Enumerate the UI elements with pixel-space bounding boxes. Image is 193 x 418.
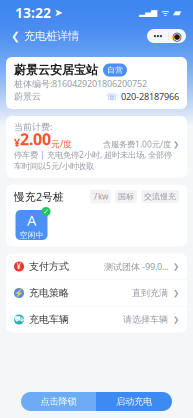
staticText: 020-28187966 [121,90,179,103]
staticText: 慢充2号桩 [14,189,64,204]
button[interactable]: Close [169,29,186,43]
staticText: 蔚景云安居宝站 [14,62,98,77]
staticText: ¥ [16,261,21,272]
staticText: ❯ [173,262,179,271]
staticText: ◉ [172,29,182,43]
staticText: ❯ [173,315,179,324]
button[interactable]: 启动充电 [96,392,172,411]
button[interactable]: More options [147,29,168,43]
staticText: 自营 [107,65,123,75]
staticText: ⚡ [14,288,24,298]
button[interactable]: 点击降锁 [21,392,96,411]
staticText: ❯ [173,140,179,148]
staticText: ¥ [14,135,20,150]
staticText: 含服务费1.00元/度 [103,139,171,150]
staticText: 国标 [118,191,134,202]
staticText: ❯ [173,289,179,297]
staticText: 支付方式 [29,260,69,273]
staticText: ᯤ [157,6,170,19]
button[interactable]: 含服务费1.00元/度 [103,139,179,150]
staticText: 直到充满 [132,287,168,299]
staticText: 当前计费: [14,120,52,133]
button[interactable]: ☏ [106,90,179,103]
button[interactable]: ⚡ [6,280,187,306]
staticText: 充电车辆 [29,313,69,326]
button[interactable]: ⛟ [6,306,187,332]
staticText: ➤ [51,6,63,19]
staticText: ✓ [43,207,49,216]
staticText: 请选择车辆 [123,314,168,325]
staticText: A [27,210,36,230]
staticText: ❮ [11,30,20,42]
staticText: 元/度 [51,138,72,150]
button[interactable]: Back [0,26,87,46]
staticText: ☏ [106,91,118,102]
staticText: 13:22 [15,3,51,22]
button[interactable]: ¥ [6,253,187,279]
staticText: ▰ [170,6,181,19]
staticText: 蔚景云 [14,91,41,102]
staticText: 桩体编号:8160429201806200752 [14,77,147,90]
staticText: ⛟ [14,315,24,323]
staticText: 点击降锁 [40,396,76,407]
staticText: 2.00 [20,128,51,150]
button[interactable]: Connector A, idle [14,205,52,241]
staticText: 空闲中 [19,230,43,240]
staticText: 停车费 | 充电免停2小时, 超时未出场, 全部停车时间以5元/小时收取 [14,149,172,171]
staticText: 7kw [93,191,108,202]
staticText: 测试团体 -99.0... [104,260,168,273]
staticText: ••• [153,30,162,42]
staticText: ▂▄▆ [139,8,157,17]
staticText: 交流慢充 [144,191,176,202]
staticText: 充电桩详情 [24,29,79,43]
staticText: 启动充电 [116,396,152,407]
staticText: 充电策略 [29,287,69,299]
